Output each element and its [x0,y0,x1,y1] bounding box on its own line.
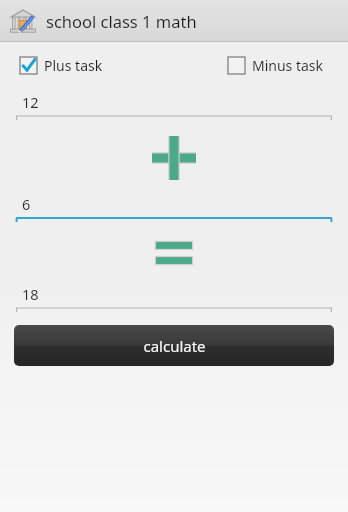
button[interactable]: 6 [16,192,332,222]
button[interactable]: Minus task [228,52,324,79]
staticText: Plus task [44,56,103,75]
button[interactable]: calculate [14,325,334,366]
staticText: Minus task [252,56,324,75]
staticText: school class 1 math [46,10,197,32]
button[interactable]: Plus task [20,52,103,79]
button[interactable]: 18 [16,282,332,312]
staticText: calculate [143,336,206,356]
staticText: 6 [22,194,31,214]
staticText: 12 [22,92,39,112]
button[interactable]: 12 [16,90,332,120]
staticText: 18 [22,284,39,304]
